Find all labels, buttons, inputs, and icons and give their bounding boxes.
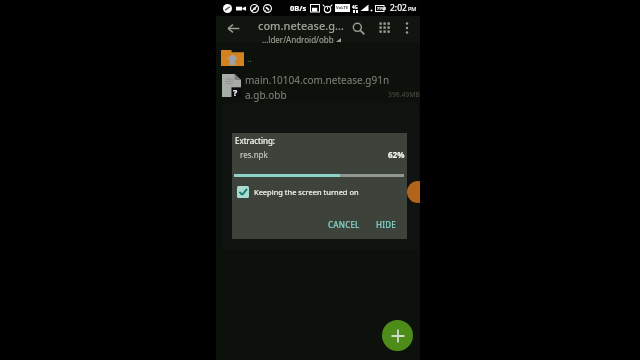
staticText: VoLTE <box>336 5 349 11</box>
button[interactable]: com.netease.g… <box>246 18 356 44</box>
button[interactable]: CANCEL <box>322 216 366 233</box>
staticText: Extracting: <box>235 135 275 146</box>
staticText: ? <box>233 86 238 98</box>
button[interactable]: Keeping the screen turned on <box>235 184 361 200</box>
staticText: 71% <box>377 6 384 11</box>
staticText: .. <box>247 52 252 64</box>
staticText: …lder/Android/obb <box>262 34 334 44</box>
staticText: HIDE <box>376 219 396 230</box>
button[interactable]: ? <box>216 70 420 102</box>
staticText: main.10104.com.netease.g91n <box>245 73 390 87</box>
button[interactable]: Search <box>347 17 369 39</box>
staticText: PM <box>408 5 417 12</box>
staticText: 4G <box>352 4 358 10</box>
button[interactable]: Add <box>382 320 413 351</box>
staticText: Keeping the screen turned on <box>254 187 359 197</box>
staticText: CANCEL <box>328 219 360 230</box>
staticText: 398.49MB <box>388 90 420 99</box>
button[interactable]: More options <box>396 17 418 39</box>
staticText: 0B/s <box>290 3 307 13</box>
staticText: 62% <box>388 149 405 160</box>
button[interactable]: Apps grid <box>374 17 396 39</box>
staticText: a.gb.obb <box>245 88 287 102</box>
button[interactable]: Back <box>222 17 244 39</box>
staticText: com.netease.g… <box>258 18 344 33</box>
button[interactable]: .. <box>216 46 420 70</box>
staticText: res.npk <box>240 149 268 160</box>
staticText: 2:02 <box>390 2 407 14</box>
button[interactable]: HIDE <box>370 216 402 233</box>
